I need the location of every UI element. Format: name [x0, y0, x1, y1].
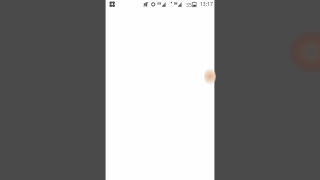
- staticText: 35: [186, 1, 192, 8]
- staticText: 13:17: [200, 1, 213, 8]
- button[interactable]: App content: [106, 0, 215, 180]
